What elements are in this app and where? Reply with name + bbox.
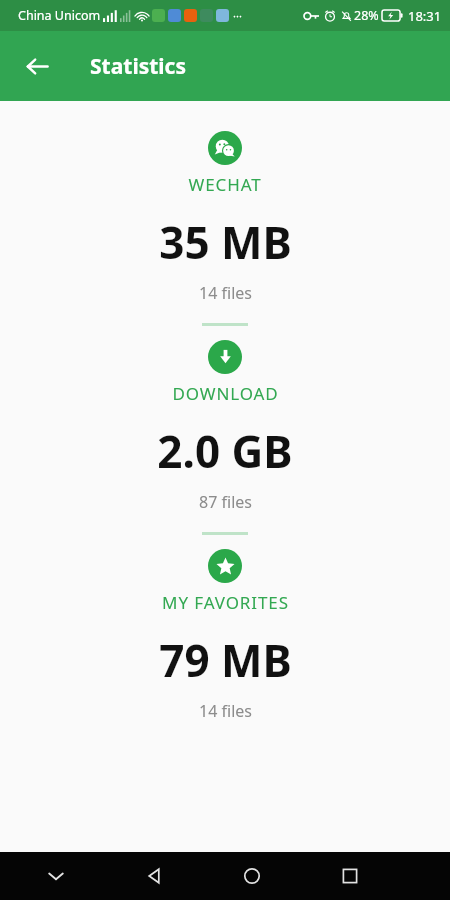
button[interactable]: Hide keyboard [32,852,80,900]
staticText: 18:31 [408,7,442,25]
button[interactable]: Back [130,852,178,900]
button[interactable]: Home [228,852,276,900]
staticText: DOWNLOAD [172,382,279,405]
staticText: 28% [354,7,379,24]
button[interactable]: WECHAT [0,131,450,304]
button[interactable]: Back [13,42,61,90]
button[interactable]: MY FAVORITES [0,549,450,722]
staticText: Statistics [90,52,186,81]
staticText: ··· [233,8,242,23]
button[interactable]: DOWNLOAD [0,340,450,513]
staticText: MY FAVORITES [162,591,289,614]
staticText: WECHAT [188,173,262,196]
staticText: 14 files [199,700,252,722]
staticText: China Unicom [18,7,101,24]
staticText: 35 MB [159,212,292,272]
staticText: 14 files [199,282,252,304]
staticText: 2.0 GB [157,421,293,481]
button[interactable]: Recents [326,852,374,900]
staticText: 87 files [199,491,252,513]
staticText: 79 MB [159,630,292,690]
